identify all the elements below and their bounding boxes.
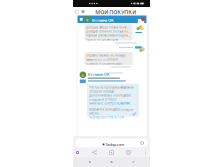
staticText: обратно можно по номеру xyxy=(86,54,125,57)
staticText: Instagram и в Viber: xyxy=(89,98,117,101)
staticText: обзоров на вещи xyxy=(89,90,114,93)
staticText: Дополнительно к сообщества xyxy=(89,94,130,97)
button[interactable]: Вставка ОК xyxy=(77,15,146,23)
staticText: ik.com/public1987672t4 xyxy=(89,116,124,119)
staticText: Вступайте в сообществе Instagram xyxy=(89,108,133,111)
button[interactable]: Site logo xyxy=(74,9,79,15)
staticText: отзывов в Оправившееся? xyxy=(86,62,123,65)
button[interactable]: 5edop.com xyxy=(76,139,148,147)
staticText: 5edop.com xyxy=(106,142,125,147)
button[interactable]: Back xyxy=(128,158,138,166)
staticText: просто по дизайнерам xyxy=(86,38,118,41)
staticText: wwlw.vbre.com/*grt=kQakkzrMNt. xyxy=(89,102,131,105)
staticText: мегу бк xyxy=(89,112,98,115)
button[interactable]: Menu xyxy=(80,9,86,15)
button[interactable]: Share xyxy=(90,148,99,157)
button[interactable]: Home xyxy=(106,158,116,166)
button[interactable]: Tabs xyxy=(107,148,116,157)
button[interactable]: Account xyxy=(124,148,133,157)
staticText: МОИ ПОКУПКИ xyxy=(95,9,136,16)
staticText: добрый автодн планы толково те xyxy=(86,26,131,29)
staticText: Что бы не пропустить актуальных xyxy=(89,86,133,89)
button[interactable]: Shield xyxy=(73,148,82,157)
staticText: заказа по 89 от Lifecom xyxy=(86,58,117,61)
staticText: Вставка ОК xyxy=(92,17,114,23)
staticText: Вставка ОК xyxy=(88,72,110,77)
button[interactable]: Menu xyxy=(141,148,150,157)
staticText: доведен отлично больше по 2016 xyxy=(86,30,131,33)
staticText: первый раз так отменялось,было xyxy=(86,34,131,37)
button[interactable]: Recent apps xyxy=(85,158,95,166)
